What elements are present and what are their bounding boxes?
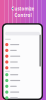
staticText: Control xyxy=(14,12,31,18)
button[interactable]: Control xyxy=(3,72,42,78)
button[interactable]: Control xyxy=(3,83,42,89)
button[interactable]: Control xyxy=(3,89,42,95)
staticText: Customize xyxy=(11,6,34,12)
button[interactable]: Control xyxy=(3,53,42,59)
button[interactable]: Control xyxy=(3,47,42,53)
button[interactable]: Control xyxy=(3,95,42,100)
button[interactable]: Control xyxy=(3,78,42,83)
button[interactable]: Control xyxy=(3,42,42,47)
button[interactable]: Control xyxy=(3,59,42,65)
button[interactable]: Control xyxy=(3,65,42,71)
